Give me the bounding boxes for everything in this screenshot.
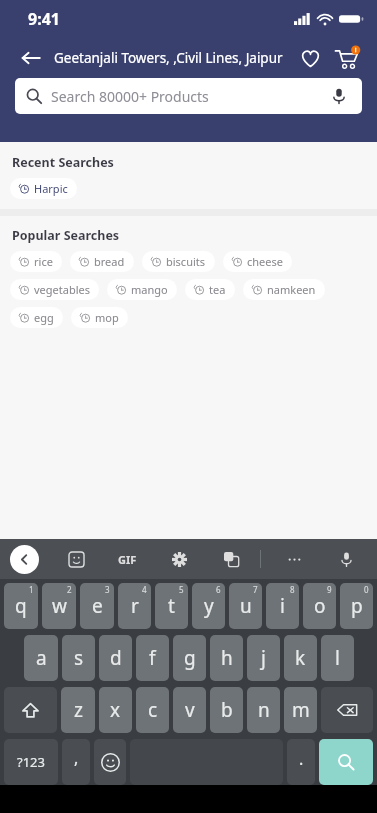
button[interactable]: m [284, 687, 317, 733]
button[interactable]: f [136, 635, 169, 681]
staticText: g [184, 645, 196, 671]
button[interactable]: Translate [217, 545, 245, 573]
button[interactable]: , [62, 739, 90, 785]
button[interactable]: w [42, 583, 76, 629]
button[interactable]: biscuits [142, 251, 215, 272]
staticText: t [168, 593, 175, 619]
staticText: Harpic [34, 181, 68, 196]
staticText: 3 [105, 584, 110, 595]
staticText: z [74, 697, 83, 723]
button[interactable]: k [284, 635, 317, 681]
staticText: , [74, 747, 79, 769]
staticText: tea [209, 282, 226, 297]
staticText: f [149, 645, 156, 671]
staticText: h [221, 645, 233, 671]
button[interactable]: h [210, 635, 243, 681]
button[interactable]: namkeen [243, 279, 325, 300]
staticText: bread [94, 254, 125, 269]
staticText: rice [34, 254, 53, 269]
button[interactable]: ?123 [4, 739, 58, 785]
button[interactable]: v [173, 687, 206, 733]
button[interactable]: Shift [4, 687, 57, 733]
button[interactable]: i [266, 583, 299, 629]
button[interactable]: u [229, 583, 262, 629]
staticText: y [204, 593, 214, 619]
button[interactable]: q [4, 583, 38, 629]
button[interactable]: p [340, 583, 373, 629]
staticText: v [185, 697, 195, 723]
staticText: egg [34, 310, 54, 325]
button[interactable]: Emoji [94, 739, 126, 785]
button[interactable]: Back [14, 41, 48, 75]
staticText: vegetables [34, 282, 90, 297]
staticText: biscuits [166, 254, 206, 269]
button[interactable]: Voice input [332, 545, 360, 573]
button[interactable]: . [287, 739, 315, 785]
staticText: . [299, 748, 304, 770]
button[interactable]: g [173, 635, 206, 681]
staticText: ?123 [17, 753, 45, 771]
button[interactable]: e [80, 583, 114, 629]
staticText: 5 [179, 584, 184, 595]
button[interactable]: Back [10, 545, 39, 574]
button[interactable]: tea [185, 279, 235, 300]
staticText: l [335, 645, 340, 671]
button[interactable]: l [321, 635, 354, 681]
button[interactable]: Search [319, 739, 373, 785]
button[interactable]: b [210, 687, 243, 733]
staticText: Geetanjali Towers, ,Civil Lines, Jaipur [54, 49, 293, 67]
staticText: p [351, 593, 363, 619]
staticText: x [110, 697, 121, 723]
button[interactable]: Stickers [62, 545, 90, 573]
button[interactable]: n [247, 687, 280, 733]
button[interactable]: mango [107, 279, 177, 300]
button[interactable]: y [192, 583, 225, 629]
staticText: d [110, 645, 122, 671]
staticText: r [131, 593, 139, 619]
staticText: w [52, 593, 67, 619]
button[interactable]: a [24, 635, 58, 681]
button[interactable]: cheese [223, 251, 292, 272]
button[interactable]: Voice search [327, 84, 351, 108]
button[interactable]: r [118, 583, 151, 629]
button[interactable]: bread [70, 251, 134, 272]
staticText: 6 [216, 584, 221, 595]
button[interactable]: rice [10, 251, 62, 272]
button[interactable]: c [136, 687, 169, 733]
button[interactable]: Backspace [321, 687, 373, 733]
button[interactable]: mop [71, 307, 128, 328]
button[interactable]: x [99, 687, 132, 733]
button[interactable]: Wishlist [293, 41, 327, 75]
staticText: GIF [118, 552, 137, 567]
button[interactable]: Settings [165, 545, 193, 573]
button[interactable]: vegetables [10, 279, 99, 300]
staticText: Search 80000+ Products [51, 87, 327, 106]
staticText: 2 [67, 584, 72, 595]
staticText: n [258, 697, 270, 723]
staticText: 1 [29, 584, 34, 595]
button[interactable]: d [99, 635, 132, 681]
staticText: cheese [247, 254, 283, 269]
button[interactable]: More options [280, 545, 308, 573]
button[interactable]: s [62, 635, 95, 681]
staticText: u [240, 593, 252, 619]
button[interactable]: Search 80000+ Products [15, 78, 362, 114]
button[interactable]: j [247, 635, 280, 681]
staticText: Popular Searches [12, 227, 120, 244]
staticText: c [148, 697, 158, 723]
button[interactable]: egg [10, 307, 63, 328]
staticText: 9:41 [28, 8, 60, 30]
button[interactable]: t [155, 583, 188, 629]
button[interactable]: Harpic [10, 178, 77, 199]
staticText: Recent Searches [12, 154, 114, 171]
staticText: k [295, 645, 306, 671]
button[interactable]: o [303, 583, 336, 629]
staticText: mango [131, 282, 168, 297]
staticText: a [36, 645, 47, 671]
button[interactable]: z [61, 687, 95, 733]
staticText: namkeen [267, 282, 316, 297]
button[interactable]: Cart [329, 41, 363, 75]
staticText: 7 [253, 584, 258, 595]
button[interactable]: GIF [114, 548, 141, 571]
